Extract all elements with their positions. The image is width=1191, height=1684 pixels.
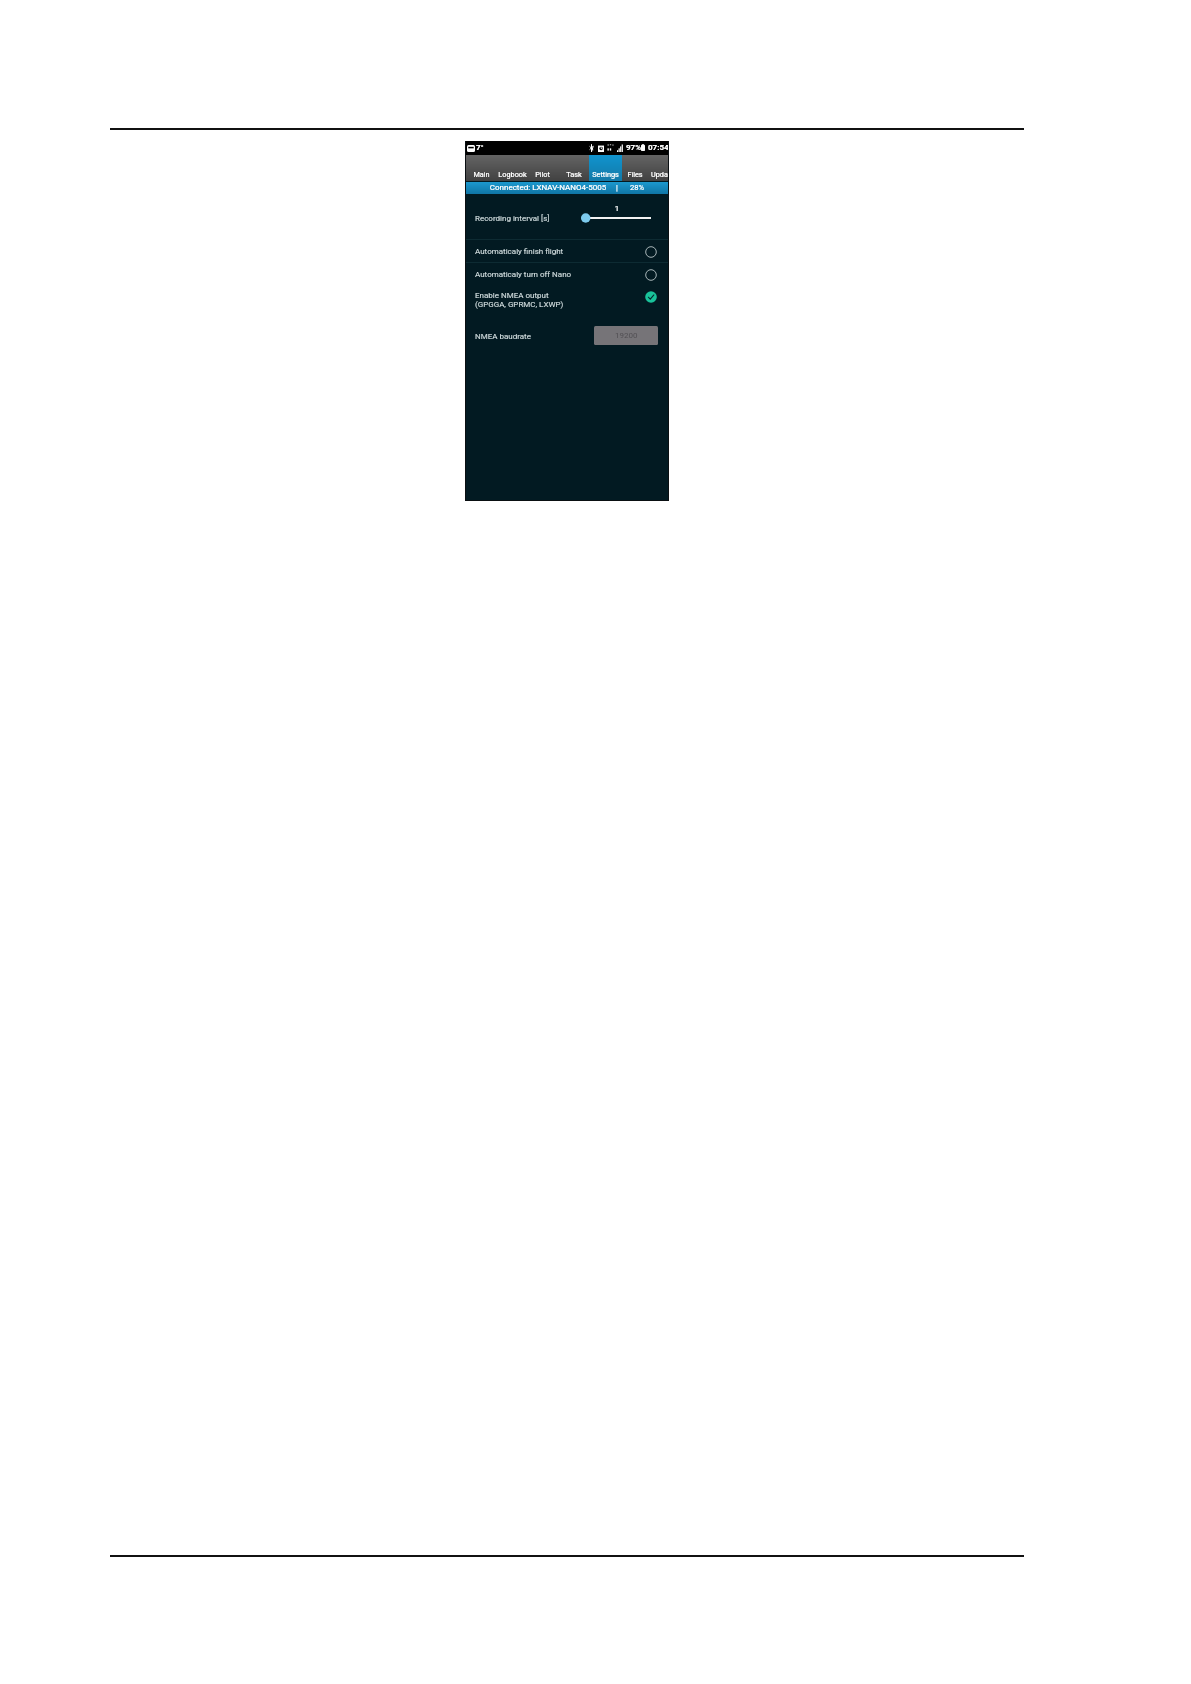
staticText: Enable NMEA output — [475, 291, 549, 300]
button[interactable]: Automaticaly turn off Nano — [465, 263, 669, 286]
staticText: Files — [627, 170, 643, 179]
staticText: 7° — [476, 143, 484, 152]
button[interactable]: Upda — [644, 155, 674, 181]
staticText: (GPGGA, GPRMC, LXWP) — [475, 300, 564, 309]
staticText: Main — [473, 170, 490, 179]
button[interactable]: Settings — [588, 155, 622, 181]
button[interactable]: Enable NMEA output — [465, 286, 669, 316]
staticText: 1 — [607, 204, 627, 213]
staticText: 97% — [626, 143, 642, 152]
other: Unchecked — [645, 246, 657, 258]
button[interactable]: NMEA baudrate — [465, 322, 669, 350]
other: Battery 97 percent — [641, 144, 645, 151]
staticText: Connected: LXNAV-NANO4-5005 — [468, 183, 628, 192]
staticText: | — [607, 183, 627, 192]
button[interactable]: Logbook — [493, 155, 531, 181]
button[interactable]: Automaticaly finish flight — [465, 240, 669, 263]
button[interactable]: Main — [469, 155, 493, 181]
button[interactable]: Connected: LXNAV-NANO4-5005 — [465, 182, 669, 194]
button[interactable]: 19200 — [594, 326, 658, 345]
staticText: Task — [566, 170, 582, 179]
staticText: Logbook — [498, 170, 527, 179]
other: Mobile data — [607, 144, 614, 151]
staticText: Pilot — [535, 170, 550, 179]
staticText: Automaticaly finish flight — [475, 247, 564, 256]
other: Bluetooth — [589, 144, 594, 152]
button[interactable]: Task — [562, 155, 586, 181]
other: Alarm set — [598, 145, 604, 152]
other: Recording interval slider — [579, 212, 653, 224]
other: Checked — [645, 291, 657, 303]
staticText: NMEA baudrate — [475, 332, 531, 341]
staticText: Settings — [592, 170, 619, 179]
staticText: Upda — [651, 170, 668, 179]
staticText: 07:54 — [648, 143, 669, 152]
staticText: Automaticaly turn off Nano — [475, 270, 572, 279]
button[interactable]: Recording interval [s] — [465, 194, 669, 239]
staticText: Recording interval [s] — [475, 214, 550, 223]
button[interactable]: Pilot — [530, 155, 554, 181]
staticText: 28% — [622, 183, 652, 192]
button[interactable]: Files — [623, 155, 647, 181]
other: Signal strength — [617, 144, 623, 152]
other: Unchecked — [645, 269, 657, 281]
staticText: 19200 — [615, 331, 638, 340]
